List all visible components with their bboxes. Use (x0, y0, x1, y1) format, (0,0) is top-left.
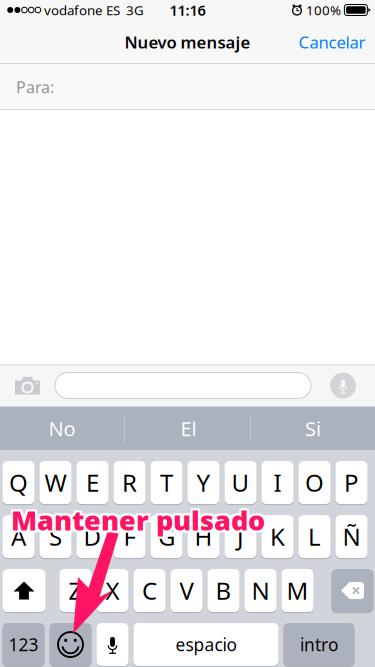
staticText: Cancelar (298, 31, 365, 53)
staticText: Si (305, 415, 321, 442)
staticText: 11:16 (169, 0, 205, 20)
staticText: Mantener pulsado (11, 499, 265, 536)
button[interactable]: L (298, 514, 330, 559)
button[interactable]: X (96, 568, 128, 613)
staticText: Y (196, 466, 210, 499)
button[interactable]: No (0, 406, 124, 450)
staticText: E (86, 466, 99, 499)
button[interactable]: Take photo (5, 364, 49, 406)
button[interactable]: W (39, 460, 71, 505)
button[interactable]: B (207, 568, 239, 613)
staticText: V (179, 574, 193, 607)
staticText: W (44, 466, 66, 499)
staticText: Ñ (342, 520, 360, 553)
button[interactable]: 123 (2, 622, 44, 667)
staticText: Mantener pulsado (11, 503, 265, 540)
staticText: 123 (8, 633, 38, 656)
staticText: X (105, 574, 119, 607)
button[interactable]: G (150, 514, 182, 559)
staticText: Mantener pulsado (13, 499, 267, 536)
button[interactable]: Q (2, 460, 34, 505)
button[interactable]: intro (283, 622, 354, 667)
button[interactable]: Shift (2, 568, 45, 613)
staticText: Mantener pulsado (11, 501, 265, 538)
staticText: T (160, 466, 173, 499)
staticText: Mantener pulsado (9, 499, 263, 536)
staticText: N (251, 574, 269, 607)
staticText: 3G (126, 1, 144, 19)
staticText: El (180, 415, 196, 442)
button[interactable]: R (113, 460, 145, 505)
staticText: D (83, 520, 101, 553)
staticText: H (194, 520, 212, 553)
staticText: Nuevo mensaje (124, 31, 250, 53)
button[interactable]: K (261, 514, 293, 559)
button[interactable]: F (113, 514, 145, 559)
button[interactable]: H (187, 514, 219, 559)
button[interactable]: P (335, 460, 367, 505)
staticText: Mantener pulsado (9, 503, 263, 540)
staticText: K (270, 520, 285, 553)
staticText: Para: (16, 76, 54, 98)
staticText: Z (68, 574, 82, 607)
staticText: B (215, 574, 231, 607)
button[interactable]: V (170, 568, 202, 613)
staticText: No (48, 415, 75, 442)
button[interactable]: espacio (133, 622, 278, 667)
staticText: espacio (175, 633, 236, 656)
button[interactable]: U (224, 460, 256, 505)
button[interactable]: J (224, 514, 256, 559)
button[interactable]: I (261, 460, 293, 505)
staticText: A (11, 520, 26, 553)
button[interactable]: Ñ (335, 514, 367, 559)
staticText: C (142, 574, 157, 607)
staticText: U (231, 466, 249, 499)
button[interactable]: S (39, 514, 71, 559)
staticText: G (158, 520, 175, 553)
staticText: Q (9, 466, 28, 499)
button[interactable]: D (76, 514, 108, 559)
staticText: intro (300, 633, 338, 656)
staticText: 100% (306, 1, 341, 19)
button[interactable]: E (76, 460, 108, 505)
staticText: Mantener pulsado (13, 501, 267, 538)
button[interactable]: Dictate (322, 364, 364, 406)
button[interactable]: T (150, 460, 182, 505)
staticText: vodafone ES (44, 1, 120, 19)
button[interactable]: Z (59, 568, 91, 613)
button[interactable]: Si (251, 406, 375, 450)
staticText: S (49, 520, 62, 553)
staticText: J (237, 520, 244, 553)
button[interactable]: Emoji (49, 622, 91, 667)
staticText: I (273, 466, 281, 499)
staticText: L (308, 520, 321, 553)
staticText: Mantener pulsado (9, 501, 263, 538)
staticText: M (286, 574, 308, 607)
button[interactable]: O (298, 460, 330, 505)
staticText: F (123, 520, 135, 553)
button[interactable]: Dictation (96, 622, 128, 667)
staticText: O (305, 466, 324, 499)
button[interactable]: M (281, 568, 313, 613)
button[interactable]: A (2, 514, 34, 559)
button[interactable]: N (244, 568, 276, 613)
button[interactable]: C (133, 568, 165, 613)
button[interactable]: El (126, 406, 251, 450)
button[interactable]: Y (187, 460, 219, 505)
button[interactable]: Delete (331, 568, 373, 613)
staticText: Mantener pulsado (13, 503, 267, 540)
staticText: P (344, 466, 359, 499)
staticText: R (122, 466, 137, 499)
button[interactable]: Cancelar (291, 20, 373, 64)
